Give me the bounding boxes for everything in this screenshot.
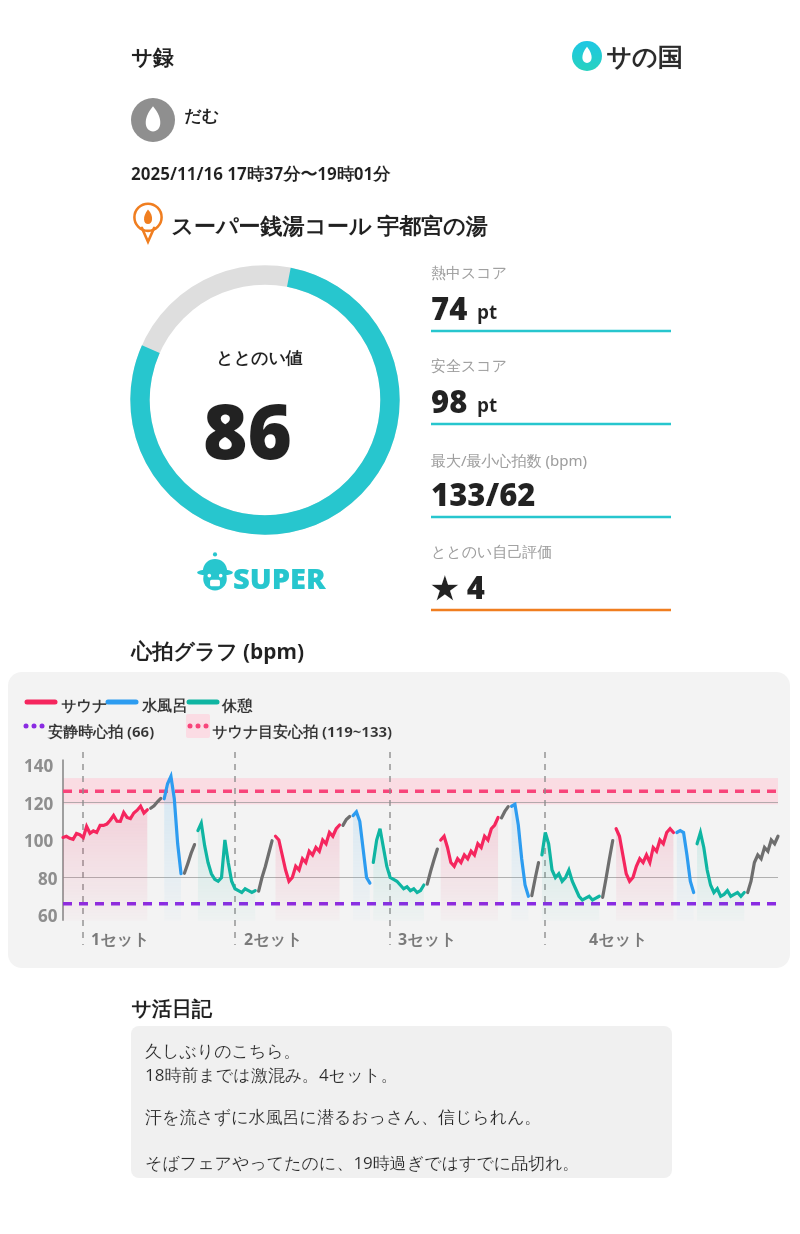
button[interactable] (431, 444, 675, 522)
staticText: 安静時心拍 (66) (48, 721, 155, 741)
staticText: 140 (24, 754, 54, 777)
button[interactable] (131, 262, 401, 592)
staticText: ととのい自己評価 (431, 543, 553, 562)
staticText: 86 (203, 378, 293, 482)
staticText: 久しぶりのこちら。 (145, 1041, 301, 1062)
staticText: サ録 (131, 45, 174, 71)
staticText: スーパー銭湯コール 宇都宮の湯 (171, 210, 488, 240)
button[interactable] (431, 258, 675, 336)
staticText: 60 (38, 904, 58, 927)
staticText: 水風呂 (142, 697, 187, 716)
staticText: 1セット (91, 928, 150, 950)
staticText: 120 (24, 792, 54, 815)
staticText: 2025/11/16 17時37分〜19時01分 (131, 162, 391, 185)
staticText: 18時前までは激混み。4セット。 (145, 1063, 398, 1086)
button[interactable] (131, 1026, 672, 1178)
staticText: 汗を流さずに水風呂に潜るおっさん、信じられん。 (145, 1107, 542, 1128)
staticText: ととのい値 (216, 348, 303, 369)
staticText: 100 (24, 829, 54, 852)
staticText: SUPER (233, 558, 326, 597)
staticText: 98 (431, 380, 468, 422)
staticText: 3セット (398, 928, 457, 950)
staticText: 4セット (589, 928, 648, 950)
staticText: 安全スコア (431, 357, 508, 376)
staticText: サ活日記 (131, 997, 212, 1022)
staticText: 心拍グラフ (bpm) (131, 637, 305, 666)
staticText: 最大/最小心拍数 (bpm) (431, 450, 587, 470)
button[interactable]: サの国 ホーム (566, 34, 688, 78)
button[interactable] (431, 351, 675, 429)
staticText: サの国 (606, 42, 683, 73)
button[interactable] (431, 537, 675, 615)
staticText: 2セット (244, 928, 303, 950)
staticText: サウナ (61, 697, 108, 716)
staticText: ★ 4 (431, 566, 486, 608)
staticText: pt (477, 299, 498, 325)
staticText: そばフェアやってたのに、19時過ぎではすでに品切れ。 (145, 1151, 580, 1174)
staticText: pt (477, 392, 498, 418)
staticText: 133/62 (431, 473, 536, 515)
staticText: 74 (431, 287, 468, 329)
button[interactable] (8, 672, 790, 968)
staticText: 80 (38, 867, 58, 890)
staticText: 熱中スコア (431, 264, 508, 283)
staticText: サウナ目安心拍 (119~133) (212, 721, 393, 741)
staticText: 休憩 (222, 697, 252, 716)
staticText: だむ (184, 106, 219, 127)
button[interactable] (131, 96, 281, 142)
button[interactable] (131, 200, 531, 244)
